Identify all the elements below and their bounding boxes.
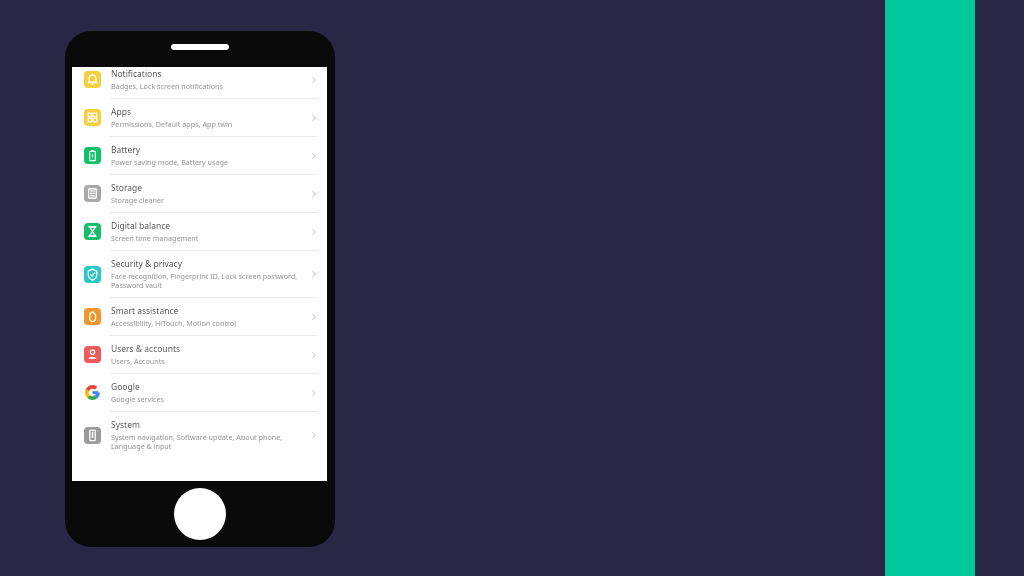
staticText: Users, Accounts xyxy=(111,356,165,366)
staticText: Google xyxy=(111,381,140,393)
button[interactable]: Security & privacy xyxy=(72,251,327,297)
button[interactable]: Users & accounts xyxy=(72,336,327,373)
button[interactable]: Notifications xyxy=(72,61,327,98)
staticText: Users & accounts xyxy=(111,343,181,355)
staticText: Permissions, Default apps, App twin xyxy=(111,119,233,129)
staticText: Security & privacy xyxy=(111,258,182,270)
staticText: Accessibility, HiTouch, Motion control xyxy=(111,318,237,328)
staticText: System navigation, Software update, Abou… xyxy=(111,432,305,451)
staticText: Badges, Lock screen notifications xyxy=(111,81,223,91)
button[interactable]: Google xyxy=(72,374,327,411)
button[interactable]: Apps xyxy=(72,99,327,136)
staticText: System xyxy=(111,419,140,431)
staticText: Digital balance xyxy=(111,220,171,232)
staticText: Notifications xyxy=(111,68,162,80)
staticText: Face recognition, Fingerprint ID, Lock s… xyxy=(111,271,305,290)
staticText: Storage xyxy=(111,182,143,194)
button[interactable]: Battery xyxy=(72,137,327,174)
button[interactable]: Smart assistance xyxy=(72,298,327,335)
button[interactable]: Home xyxy=(174,488,226,540)
staticText: Screen time management xyxy=(111,233,199,243)
staticText: Power saving mode, Battery usage xyxy=(111,157,228,167)
staticText: Apps xyxy=(111,106,131,118)
staticText: Battery xyxy=(111,144,141,156)
staticText: Storage cleaner xyxy=(111,195,164,205)
staticText: Smart assistance xyxy=(111,305,179,317)
button[interactable]: Storage xyxy=(72,175,327,212)
button[interactable]: System xyxy=(72,412,327,458)
button[interactable]: Digital balance xyxy=(72,213,327,250)
staticText: Google services xyxy=(111,394,165,404)
